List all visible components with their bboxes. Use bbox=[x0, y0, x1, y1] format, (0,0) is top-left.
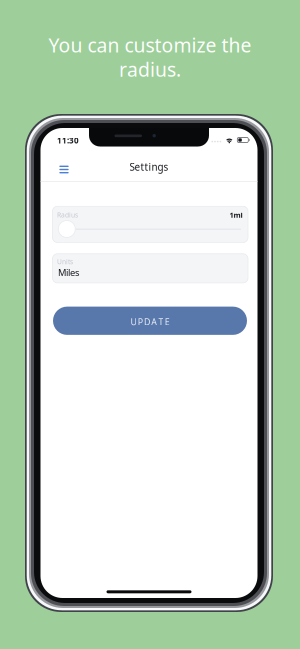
staticText: E bbox=[165, 316, 170, 328]
staticText: Units bbox=[57, 257, 73, 266]
button[interactable]: U bbox=[53, 307, 247, 335]
staticText: Radius bbox=[57, 210, 78, 219]
staticText: Settings bbox=[129, 160, 168, 173]
staticText: You can customize the bbox=[48, 32, 251, 58]
staticText: A bbox=[151, 316, 157, 328]
staticText: D bbox=[144, 316, 150, 328]
staticText: 1mi bbox=[229, 210, 242, 220]
staticText: 11:30 bbox=[57, 135, 79, 146]
staticText: Miles bbox=[58, 266, 79, 279]
staticText: T bbox=[158, 316, 163, 328]
button[interactable]: Menu bbox=[53, 159, 75, 179]
staticText: U bbox=[130, 316, 136, 328]
staticText: P bbox=[138, 316, 143, 328]
staticText: radius. bbox=[119, 56, 181, 82]
